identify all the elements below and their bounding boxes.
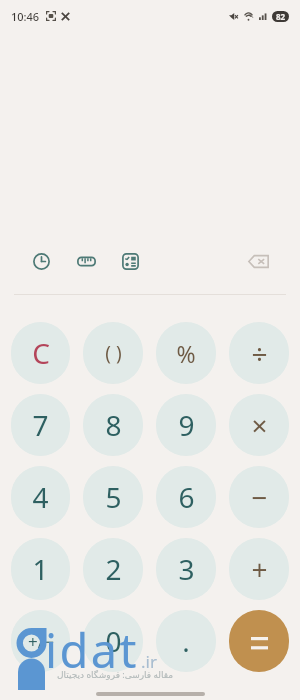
button[interactable]: Backspace	[243, 247, 273, 275]
staticText: +/−	[28, 630, 54, 653]
button[interactable]: Parentheses	[83, 322, 143, 384]
button[interactable]: Minus	[229, 466, 289, 528]
button[interactable]: Equals	[229, 610, 289, 672]
button[interactable]: Unit converter	[72, 247, 100, 275]
staticText: .	[182, 622, 190, 660]
button[interactable]: 3	[156, 538, 216, 600]
button[interactable]: 9	[156, 394, 216, 456]
staticText: +	[251, 550, 268, 588]
staticText: 8	[105, 406, 122, 444]
button[interactable]: 2	[83, 538, 143, 600]
button[interactable]: 5	[83, 466, 143, 528]
button[interactable]: Scientific mode	[116, 247, 144, 275]
staticText: مقاله فارسی: فروشگاه دیجیتال	[57, 668, 174, 680]
button[interactable]: Plus minus	[11, 610, 70, 672]
staticText: 3	[178, 550, 195, 588]
staticText: 2	[105, 550, 122, 588]
staticText: 1	[32, 550, 49, 588]
button[interactable]: 7	[11, 394, 70, 456]
button[interactable]: Divide	[229, 322, 289, 384]
button[interactable]: Decimal point	[156, 610, 216, 672]
staticText: 6	[178, 478, 195, 516]
button[interactable]: 1	[11, 538, 70, 600]
staticText: C	[32, 334, 50, 372]
staticText: 0	[105, 622, 122, 660]
staticText: 10:46	[11, 9, 40, 24]
button[interactable]: 6	[156, 466, 216, 528]
staticText: 9	[178, 406, 195, 444]
staticText: idat	[45, 618, 139, 682]
button[interactable]: 4	[11, 466, 70, 528]
button[interactable]: Percent	[156, 322, 216, 384]
button[interactable]: Clear	[11, 322, 70, 384]
staticText: .ir	[141, 650, 157, 673]
staticText: ÷	[251, 334, 268, 372]
button[interactable]: History	[27, 247, 55, 275]
staticText: 82	[276, 11, 286, 22]
button[interactable]: Plus	[229, 538, 289, 600]
button[interactable]: 0	[83, 610, 143, 672]
staticText: 7	[32, 406, 49, 444]
staticText: 4	[32, 478, 49, 516]
button[interactable]: Multiply	[229, 394, 289, 456]
staticText: 5	[105, 478, 122, 516]
button[interactable]: 8	[83, 394, 143, 456]
staticText: −	[251, 478, 268, 516]
staticText: ×	[251, 406, 268, 444]
staticText: %	[176, 338, 196, 369]
staticText: ( )	[105, 340, 122, 366]
